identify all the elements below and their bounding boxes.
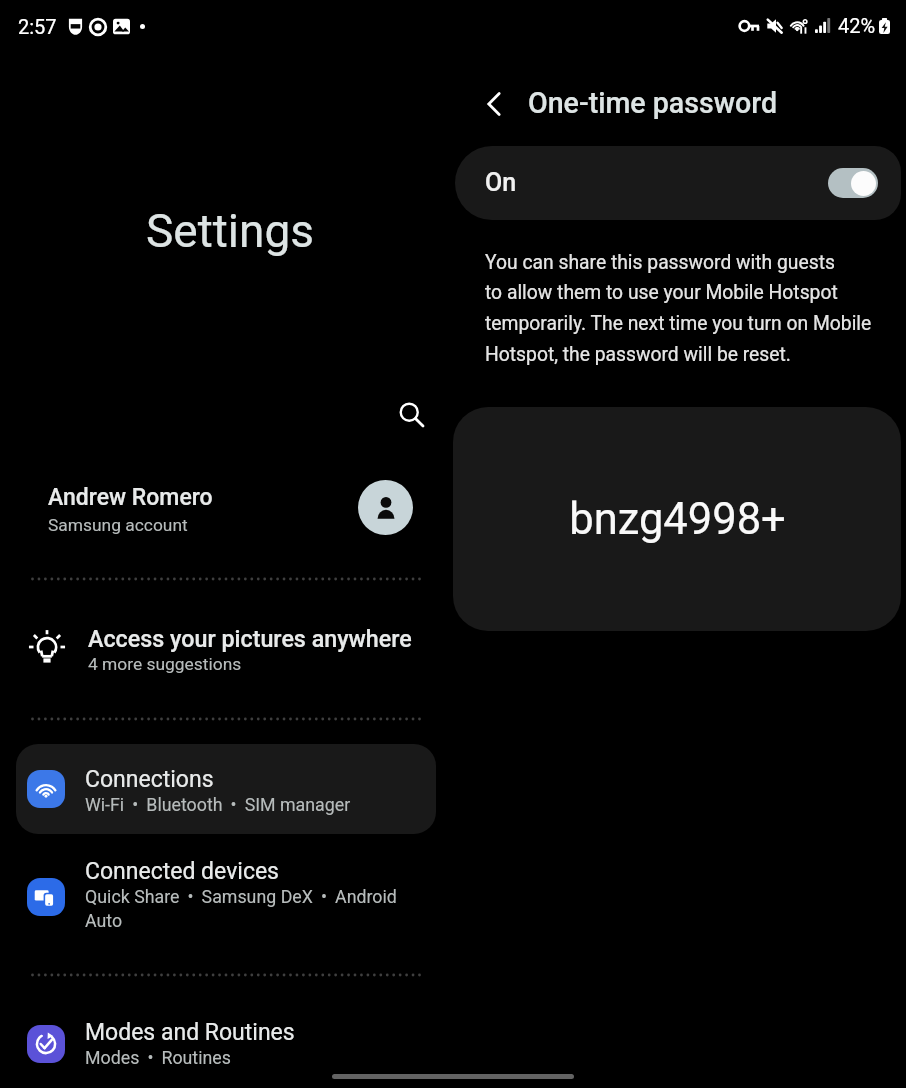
button[interactable]: One-time password on <box>828 168 878 198</box>
button[interactable]: On <box>455 146 901 220</box>
staticText: 42% <box>838 14 876 37</box>
button[interactable]: Connections <box>16 744 436 834</box>
staticText: You can share this password with guests … <box>485 251 872 366</box>
staticText: Wi-Fi • Bluetooth • SIM manager <box>85 794 351 815</box>
staticText: Connected devices <box>85 858 279 885</box>
staticText: Samsung account <box>48 515 188 535</box>
staticText: Connections <box>85 766 214 793</box>
staticText: Modes • Routines <box>85 1047 231 1068</box>
staticText: Modes and Routines <box>85 1019 295 1046</box>
staticText: 2:57 <box>18 15 57 38</box>
staticText: On <box>485 168 517 197</box>
staticText: 4 more suggestions <box>88 654 242 674</box>
button[interactable]: Search <box>387 390 431 434</box>
button[interactable]: bnzg4998+ <box>453 407 901 631</box>
button[interactable]: Access your pictures anywhere <box>0 608 453 694</box>
button[interactable]: Modes and Routines <box>16 1000 436 1088</box>
staticText: Quick Share • Samsung DeX • Android Auto <box>85 886 397 931</box>
staticText: Settings <box>146 204 314 258</box>
staticText: Andrew Romero <box>48 484 213 511</box>
button[interactable]: Back <box>472 82 516 126</box>
staticText: bnzg4998+ <box>569 494 786 545</box>
button[interactable]: Andrew Romero <box>0 470 453 560</box>
staticText: Access your pictures anywhere <box>88 625 412 652</box>
staticText: One-time password <box>528 86 778 120</box>
button[interactable]: Connected devices <box>16 846 436 950</box>
